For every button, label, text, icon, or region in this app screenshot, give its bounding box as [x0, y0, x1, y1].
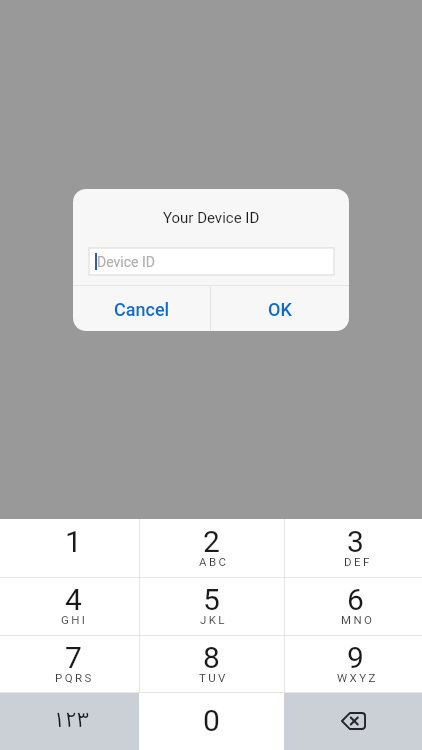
button[interactable]: 4 — [0, 577, 139, 635]
button[interactable]: 1 — [0, 519, 139, 577]
staticText: TUV — [199, 671, 228, 684]
button[interactable]: 9 — [284, 635, 422, 693]
staticText: ABC — [199, 555, 229, 568]
staticText: DEF — [344, 555, 372, 568]
button[interactable]: Device ID — [89, 248, 334, 275]
button[interactable]: Backspace — [284, 692, 422, 750]
staticText: 5 — [203, 582, 220, 617]
staticText: 0 — [203, 703, 220, 738]
staticText: Device ID — [97, 254, 155, 270]
staticText: MNO — [341, 613, 375, 626]
button[interactable]: 5 — [139, 577, 284, 635]
staticText: ١٢٣ — [53, 698, 90, 742]
button[interactable]: 6 — [284, 577, 422, 635]
staticText: 7 — [65, 640, 82, 675]
button[interactable]: ١٢٣ — [0, 692, 139, 750]
button[interactable]: Cancel — [73, 287, 210, 331]
staticText: Your Device ID — [163, 209, 260, 227]
button[interactable]: 8 — [139, 635, 284, 693]
button[interactable]: OK — [211, 287, 349, 331]
staticText: Cancel — [114, 299, 170, 320]
button[interactable]: 2 — [139, 519, 284, 577]
staticText: 9 — [347, 640, 364, 675]
staticText: PQRS — [55, 671, 94, 684]
staticText: OK — [268, 299, 292, 320]
button[interactable]: 0 — [139, 692, 284, 750]
staticText: GHI — [61, 613, 88, 626]
staticText: 6 — [347, 582, 364, 617]
button[interactable]: 3 — [284, 519, 422, 577]
staticText: WXYZ — [337, 671, 378, 684]
staticText: 1 — [65, 524, 82, 559]
staticText: 8 — [203, 640, 220, 675]
button[interactable]: 7 — [0, 635, 139, 693]
staticText: JKL — [200, 613, 227, 626]
staticText: 2 — [203, 524, 220, 559]
staticText: 4 — [65, 582, 82, 617]
staticText: 3 — [347, 524, 364, 559]
